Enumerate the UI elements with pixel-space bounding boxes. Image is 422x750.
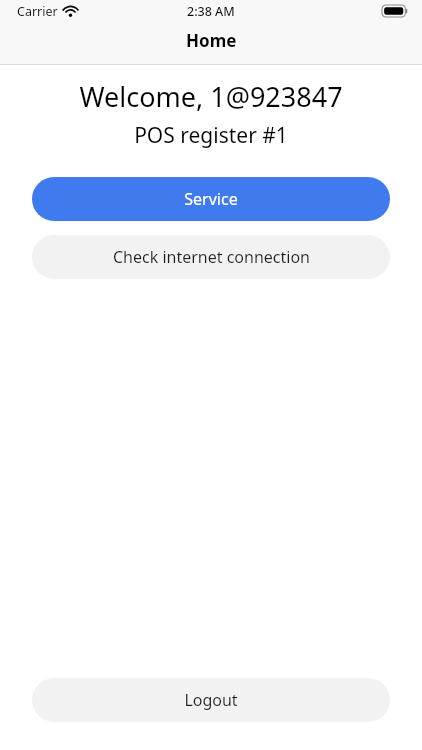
staticText: Service	[184, 188, 238, 210]
staticText: Carrier	[17, 3, 58, 20]
staticText: Check internet connection	[113, 246, 310, 268]
staticText: POS register #1	[0, 121, 422, 150]
button[interactable]: Check internet connection	[32, 235, 390, 279]
staticText: Welcome, 1@923847	[0, 78, 422, 115]
button[interactable]: Logout	[32, 678, 390, 722]
staticText: Home	[186, 29, 237, 52]
other: Wi-Fi signal	[63, 6, 78, 17]
other: Battery full	[382, 5, 408, 17]
staticText: Logout	[184, 689, 238, 711]
staticText: 2:38 AM	[187, 3, 235, 20]
button[interactable]: Service	[32, 177, 390, 221]
